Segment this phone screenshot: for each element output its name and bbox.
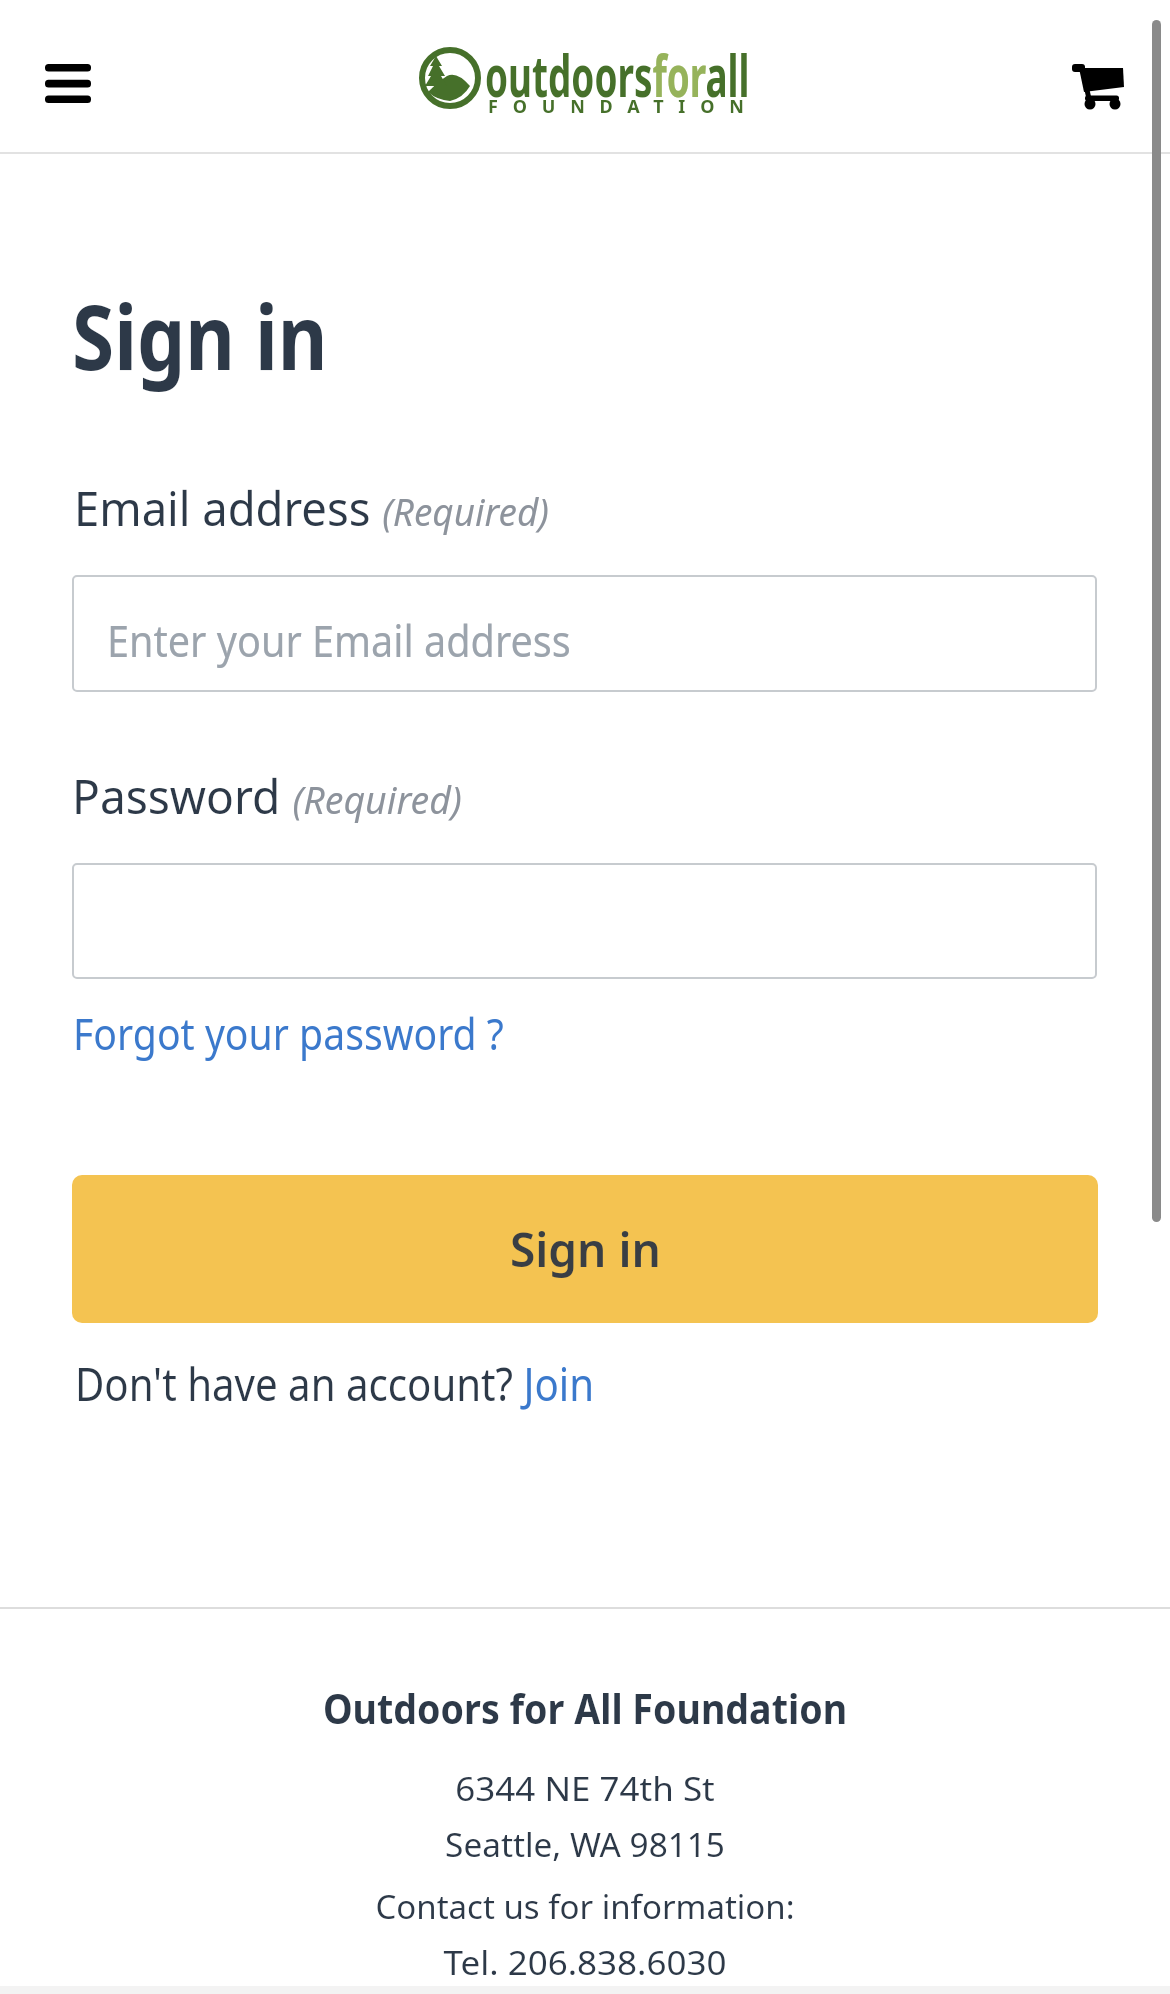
button[interactable] (1058, 50, 1138, 120)
staticText: outdoorsforall (485, 36, 750, 114)
staticText: Outdoors for All Foundation (61, 1679, 1108, 1736)
staticText: Contact us for information: (0, 1884, 1170, 1929)
button[interactable]: Don't have an account? Join (75, 1352, 594, 1415)
staticText: 6344 NE 74th St (0, 1766, 1170, 1811)
button[interactable]: Forgot your password ? (73, 1003, 505, 1063)
button[interactable] (72, 575, 1097, 692)
staticText: Email address (Required) (74, 475, 549, 540)
staticText: Tel. 206.838.6030 (0, 1940, 1170, 1985)
staticText: Sign in (72, 274, 328, 397)
staticText: Password (Required) (72, 763, 463, 828)
staticText: FOUNDATION (488, 94, 759, 119)
staticText: Sign in (510, 1218, 661, 1281)
staticText: Seattle, WA 98115 (0, 1822, 1170, 1867)
staticText: Enter your Email address (107, 610, 571, 670)
button[interactable] (35, 54, 101, 114)
button[interactable] (72, 863, 1097, 979)
button[interactable]: Sign in (72, 1175, 1098, 1323)
